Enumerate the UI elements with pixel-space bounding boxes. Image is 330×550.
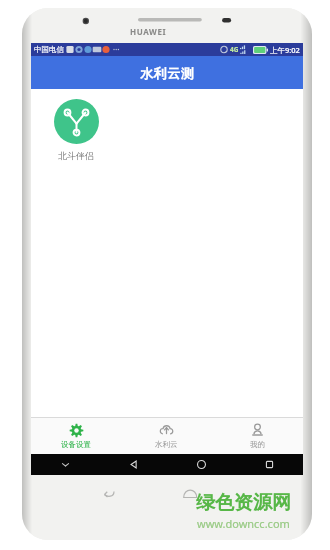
button[interactable]: 我的 bbox=[212, 418, 303, 454]
staticText: 设备设置 bbox=[61, 440, 91, 449]
staticText: 我的 bbox=[250, 440, 265, 449]
button[interactable]: 设备设置 bbox=[31, 418, 121, 454]
button[interactable]: Recent apps bbox=[235, 454, 303, 475]
staticText: 水利云测 bbox=[140, 65, 194, 81]
staticText: 水利云 bbox=[155, 440, 178, 449]
staticText: HUAWEI bbox=[130, 26, 167, 37]
button[interactable]: 水利云 bbox=[121, 418, 212, 454]
staticText: www.downcc.com bbox=[197, 516, 290, 531]
staticText: 绿色资源网 bbox=[196, 491, 291, 515]
button[interactable]: Hide navigation bar bbox=[31, 454, 99, 475]
staticText: 北斗伴侣 bbox=[58, 150, 94, 161]
staticText: 中国电信 bbox=[34, 45, 64, 54]
button[interactable]: Home bbox=[167, 454, 235, 475]
staticText: 4G bbox=[230, 45, 239, 54]
button[interactable]: Back bbox=[99, 454, 167, 475]
staticText: 上午9:02 bbox=[270, 45, 300, 55]
button[interactable]: 北斗伴侣 bbox=[47, 99, 105, 161]
